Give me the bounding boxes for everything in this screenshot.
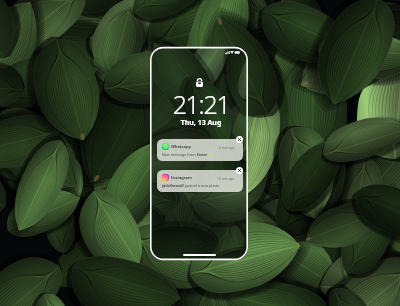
- staticText: 21:21: [152, 87, 248, 121]
- staticText: 2 min ago: [219, 145, 235, 149]
- staticText: Whatsapp: [171, 144, 192, 149]
- button[interactable]: Dismiss notification: [236, 167, 243, 174]
- staticText: 10 min ago: [217, 176, 235, 180]
- staticText: jackthewolf posted a new photo: [162, 183, 220, 188]
- button[interactable]: Dismiss notification: [236, 136, 243, 143]
- button[interactable]: Instagram: [157, 170, 243, 192]
- button[interactable]: Whatsapp: [157, 139, 243, 161]
- staticText: Instagram: [171, 175, 192, 180]
- staticText: Thu, 13 Aug: [152, 118, 248, 128]
- staticText: New message from Sister ✨: [162, 152, 213, 157]
